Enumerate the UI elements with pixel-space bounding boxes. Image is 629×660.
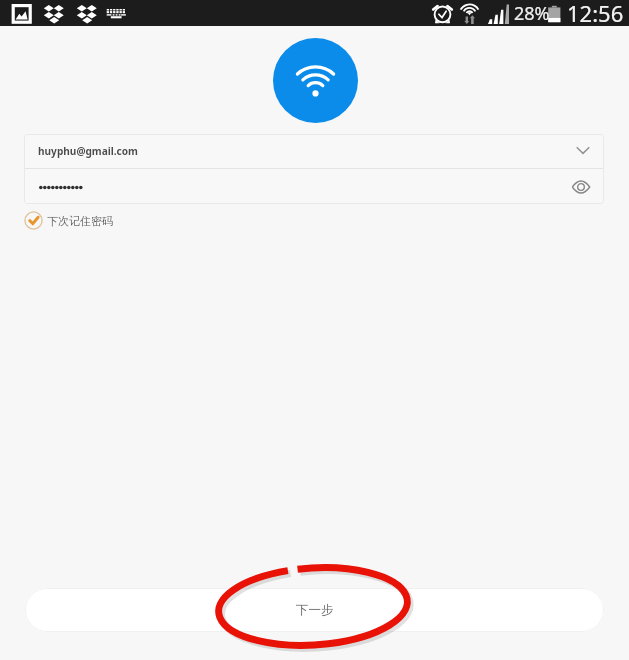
- other: Show accounts: [570, 138, 596, 164]
- staticText: 12:56: [567, 0, 624, 24]
- button[interactable]: Show password: [24, 169, 604, 204]
- staticText: huyphu@gmail.com: [38, 144, 138, 158]
- staticText: 下次记住密码: [47, 214, 113, 228]
- staticText: 28%: [514, 1, 550, 26]
- button[interactable]: 下次记住密码: [24, 211, 113, 230]
- other: Show password: [568, 174, 594, 200]
- button[interactable]: 下一步: [25, 588, 604, 632]
- staticText: 下一步: [296, 602, 334, 618]
- button[interactable]: huyphu@gmail.com: [24, 134, 604, 168]
